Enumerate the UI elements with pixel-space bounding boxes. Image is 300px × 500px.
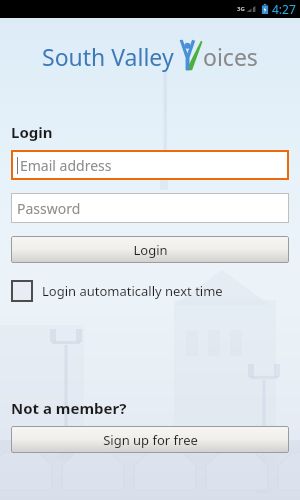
staticText: Email address: [20, 156, 112, 175]
staticText: 4:27: [272, 1, 296, 17]
button[interactable]: Password: [11, 193, 289, 223]
button[interactable]: Sign up for free: [11, 426, 289, 453]
staticText: South Valley: [42, 41, 174, 72]
staticText: oices: [203, 41, 258, 72]
staticText: Password: [17, 199, 81, 218]
staticText: Login: [11, 122, 53, 142]
button[interactable]: Login automatically next time: [11, 280, 289, 302]
staticText: 3G: [237, 5, 245, 13]
button[interactable]: Email address: [11, 150, 289, 180]
button[interactable]: Login: [11, 236, 289, 263]
staticText: Sign up for free: [103, 431, 198, 449]
staticText: Login automatically next time: [42, 282, 223, 300]
staticText: Login: [133, 241, 168, 259]
staticText: Not a member?: [11, 398, 127, 418]
